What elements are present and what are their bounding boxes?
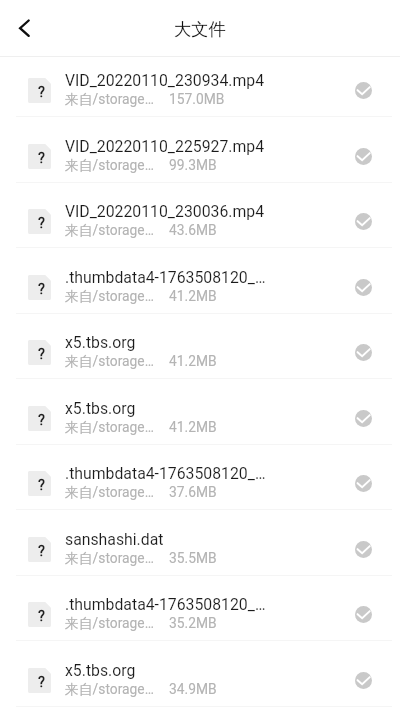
staticText: ? bbox=[38, 411, 45, 428]
staticText: 来自/storage… bbox=[65, 550, 154, 567]
staticText: 来自/storage… bbox=[65, 157, 154, 174]
staticText: 来自/storage… bbox=[65, 91, 154, 108]
button[interactable]: ? bbox=[0, 128, 400, 184]
staticText: 41.2MB bbox=[169, 288, 217, 304]
button[interactable]: ? bbox=[0, 455, 400, 511]
staticText: 来自/storage… bbox=[65, 419, 154, 436]
staticText: ? bbox=[38, 476, 45, 493]
staticText: VID_20220110_230934.mp4 bbox=[65, 71, 265, 90]
button[interactable]: Selected bbox=[355, 475, 372, 492]
button[interactable]: ? bbox=[0, 652, 400, 708]
staticText: ? bbox=[38, 214, 45, 231]
staticText: ? bbox=[38, 542, 45, 559]
staticText: VID_20220110_225927.mp4 bbox=[65, 137, 265, 156]
staticText: 35.5MB bbox=[169, 550, 217, 566]
staticText: 来自/storage… bbox=[65, 681, 154, 698]
button[interactable]: Back bbox=[8, 12, 40, 44]
staticText: 来自/storage… bbox=[65, 288, 154, 305]
staticText: .thumbdata4-1763508120_… bbox=[65, 268, 266, 287]
button[interactable]: Selected bbox=[355, 672, 372, 689]
staticText: ? bbox=[38, 149, 45, 166]
staticText: 大文件 bbox=[174, 18, 226, 40]
staticText: 37.6MB bbox=[169, 484, 217, 500]
staticText: 35.2MB bbox=[169, 615, 217, 631]
staticText: sanshashi.dat bbox=[65, 530, 164, 549]
staticText: ? bbox=[38, 83, 45, 100]
button[interactable]: Selected bbox=[355, 344, 372, 361]
button[interactable]: ? bbox=[0, 193, 400, 249]
button[interactable]: Selected bbox=[355, 606, 372, 623]
staticText: 41.2MB bbox=[169, 419, 217, 435]
button[interactable]: ? bbox=[0, 324, 400, 380]
staticText: 34.9MB bbox=[169, 681, 217, 697]
staticText: 来自/storage… bbox=[65, 484, 154, 501]
staticText: ? bbox=[38, 345, 45, 362]
button[interactable]: Selected bbox=[355, 279, 372, 296]
button[interactable]: ? bbox=[0, 62, 400, 118]
staticText: .thumbdata4-1763508120_… bbox=[65, 464, 266, 483]
staticText: ? bbox=[38, 673, 45, 690]
staticText: .thumbdata4-1763508120_… bbox=[65, 595, 266, 614]
button[interactable]: ? bbox=[0, 259, 400, 315]
button[interactable]: Selected bbox=[355, 541, 372, 558]
button[interactable]: ? bbox=[0, 521, 400, 577]
staticText: 43.6MB bbox=[169, 222, 217, 238]
staticText: x5.tbs.org bbox=[65, 399, 136, 418]
button[interactable]: ? bbox=[0, 586, 400, 642]
staticText: ? bbox=[38, 280, 45, 297]
staticText: x5.tbs.org bbox=[65, 661, 136, 680]
staticText: 来自/storage… bbox=[65, 615, 154, 632]
staticText: 41.2MB bbox=[169, 353, 217, 369]
button[interactable]: ? bbox=[0, 390, 400, 446]
staticText: VID_20220110_230036.mp4 bbox=[65, 202, 265, 221]
button[interactable]: Selected bbox=[355, 82, 372, 99]
staticText: 来自/storage… bbox=[65, 353, 154, 370]
button[interactable]: Selected bbox=[355, 148, 372, 165]
button[interactable]: Selected bbox=[355, 213, 372, 230]
staticText: ? bbox=[38, 607, 45, 624]
staticText: x5.tbs.org bbox=[65, 333, 136, 352]
button[interactable]: Selected bbox=[355, 410, 372, 427]
staticText: 来自/storage… bbox=[65, 222, 154, 239]
staticText: 99.3MB bbox=[169, 157, 217, 173]
staticText: 157.0MB bbox=[169, 91, 225, 107]
